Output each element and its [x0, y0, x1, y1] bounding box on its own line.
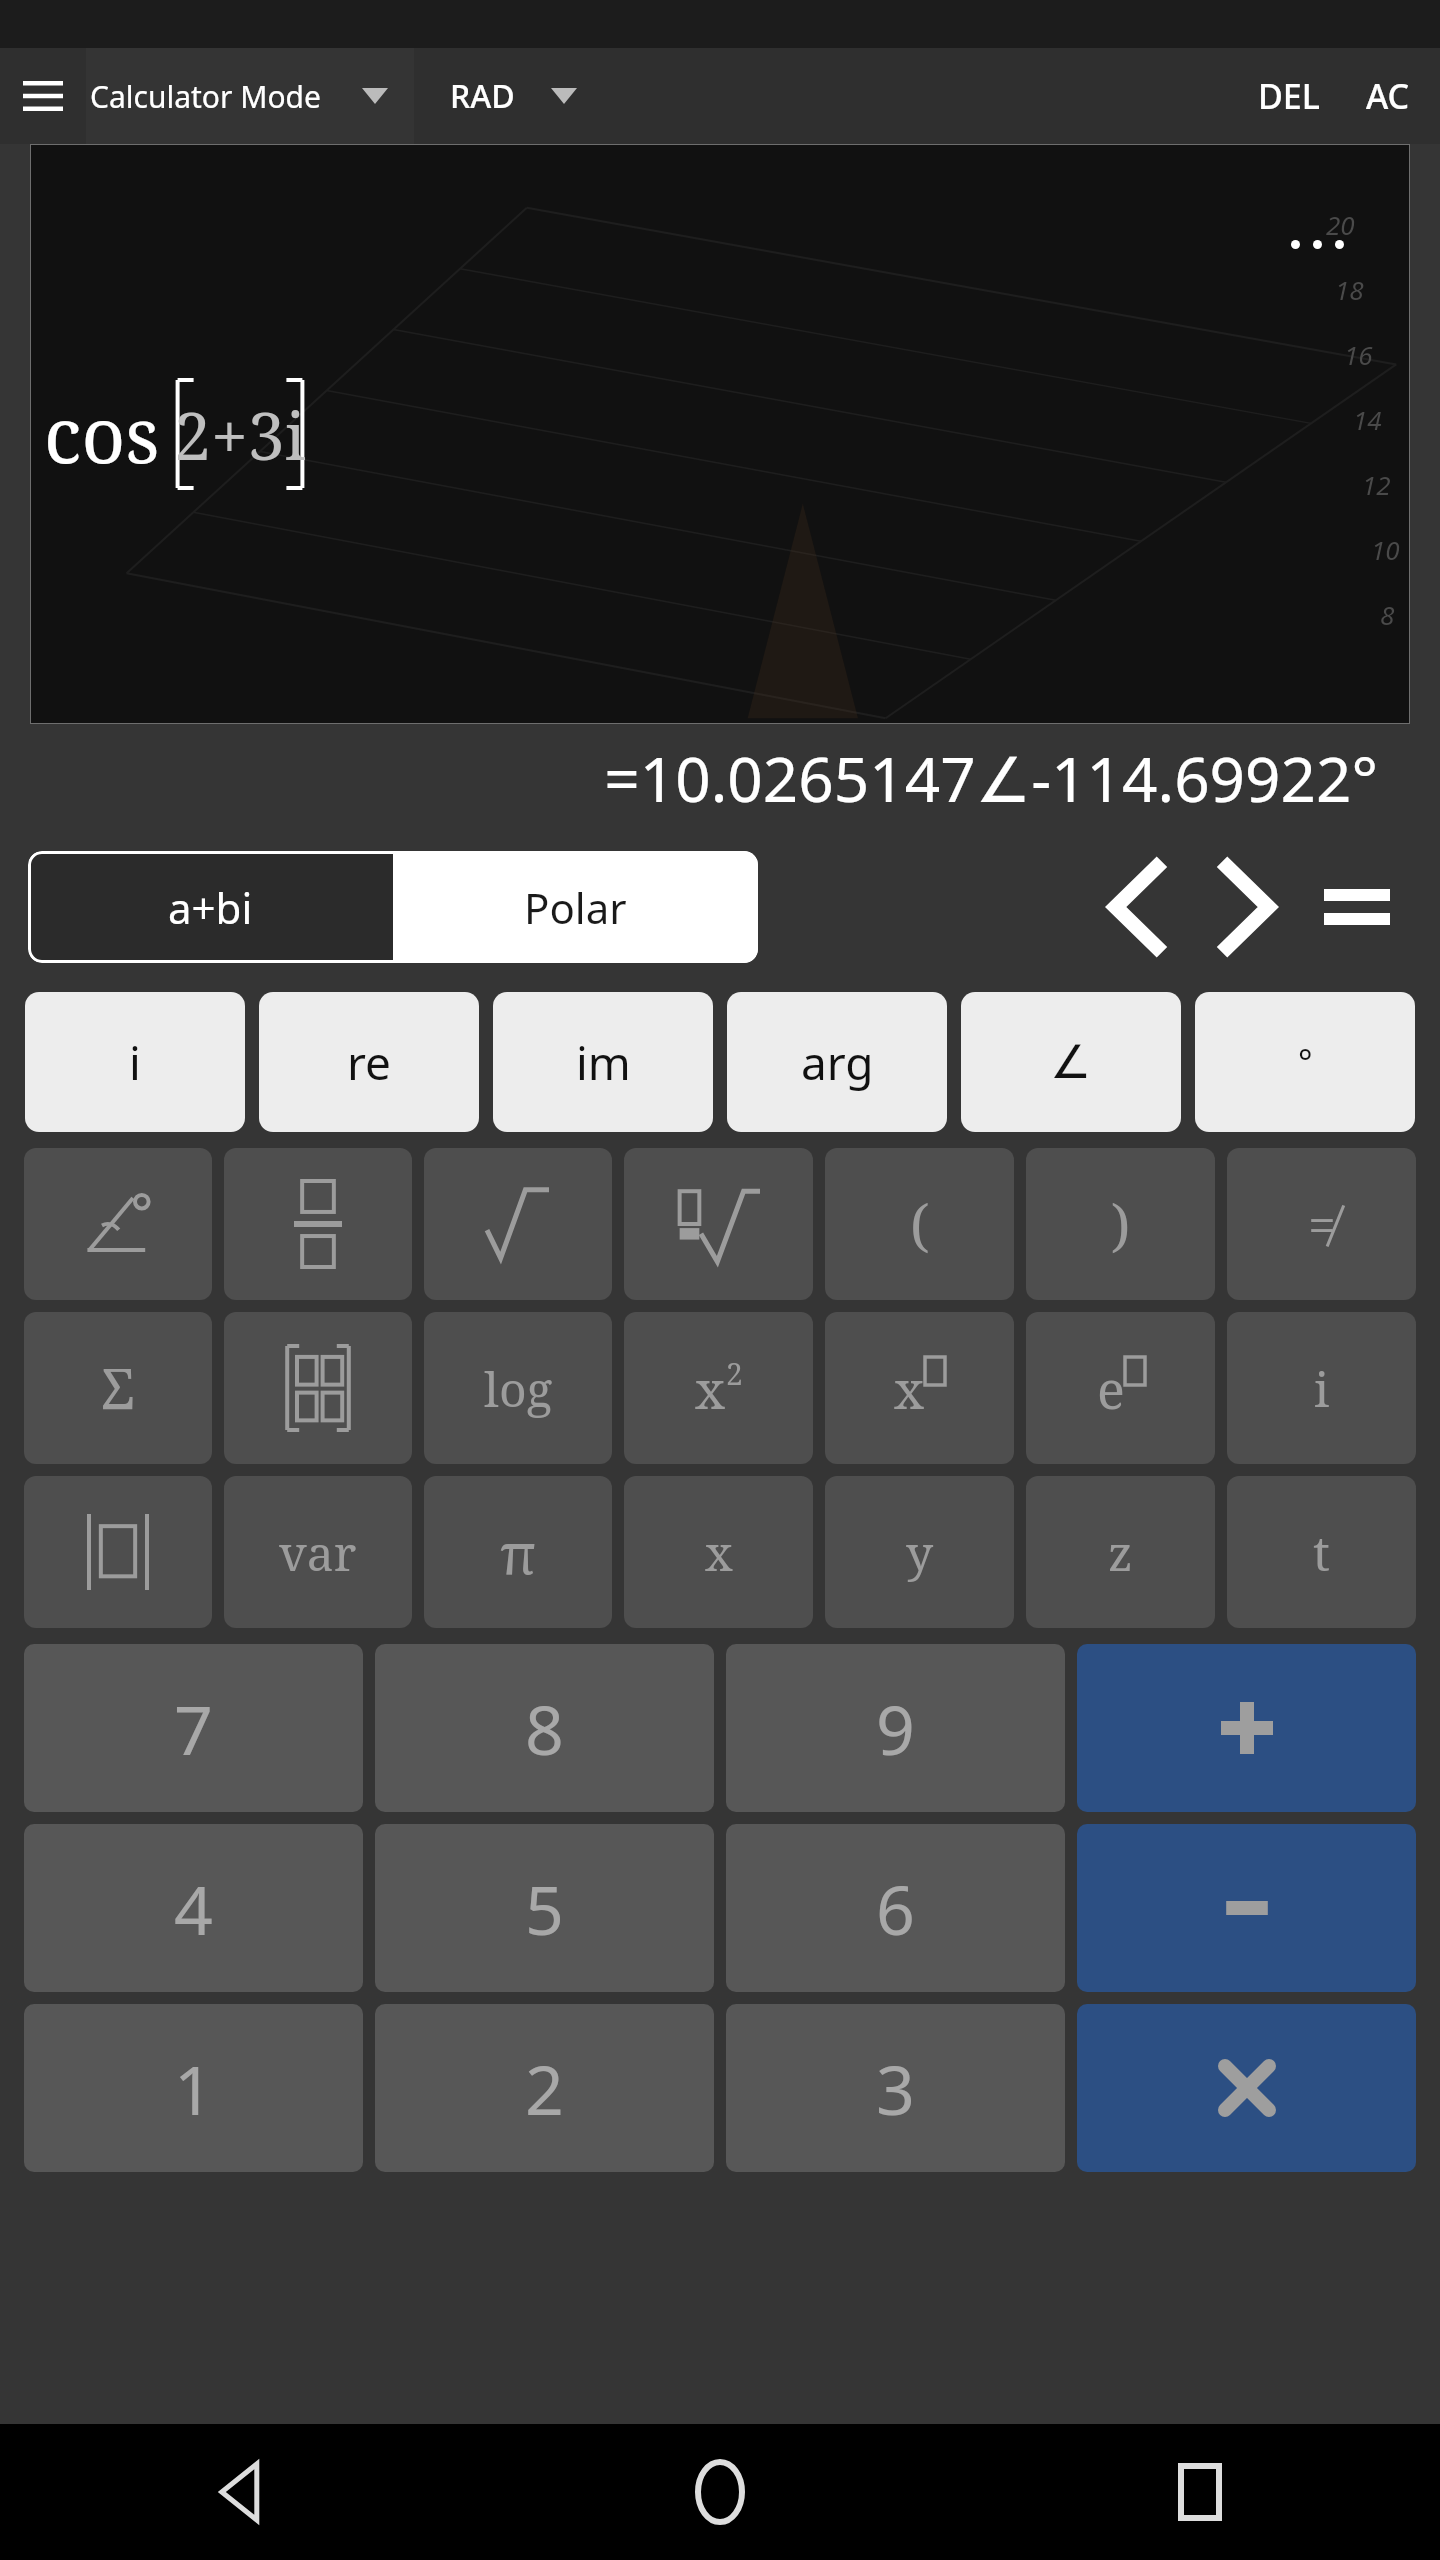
staticText: x: [894, 1353, 925, 1424]
button[interactable]: Σ: [24, 1312, 212, 1464]
staticText: re: [347, 1031, 392, 1094]
button[interactable]: Plus: [1077, 1644, 1416, 1812]
staticText: x: [705, 1520, 733, 1585]
staticText: π: [500, 1514, 537, 1590]
button[interactable]: More options: [1291, 240, 1344, 249]
staticText: 2+3i: [174, 389, 306, 479]
staticText: i: [129, 1031, 141, 1094]
button[interactable]: re: [259, 992, 479, 1132]
button[interactable]: 7: [24, 1644, 363, 1812]
button[interactable]: i: [25, 992, 245, 1132]
button[interactable]: XPOW: [825, 1312, 1014, 1464]
button[interactable]: °: [1195, 992, 1415, 1132]
staticText: 2: [726, 1353, 743, 1394]
staticText: 3: [876, 2042, 915, 2135]
staticText: y: [906, 1520, 934, 1585]
button[interactable]: FRAC: [224, 1148, 412, 1300]
button[interactable]: EPOW: [1026, 1312, 1215, 1464]
button[interactable]: NROOT: [624, 1148, 813, 1300]
staticText: 7: [174, 1682, 213, 1775]
button[interactable]: 8: [375, 1644, 714, 1812]
button[interactable]: var: [224, 1476, 412, 1628]
staticText: cos: [44, 382, 160, 486]
button[interactable]: log: [424, 1312, 612, 1464]
button[interactable]: Recents: [960, 2424, 1440, 2560]
staticText: 9: [876, 1682, 915, 1775]
staticText: z: [1108, 1520, 1133, 1585]
staticText: e: [1097, 1353, 1125, 1424]
staticText: 8: [1380, 597, 1395, 632]
button[interactable]: ANGDEG: [24, 1148, 212, 1300]
staticText: x: [695, 1353, 726, 1424]
staticText: 20: [1326, 207, 1355, 242]
button[interactable]: z: [1026, 1476, 1215, 1628]
button[interactable]: ABS: [24, 1476, 212, 1628]
button[interactable]: SQRT: [424, 1148, 612, 1300]
button[interactable]: im: [493, 992, 713, 1132]
button[interactable]: Menu: [0, 48, 86, 144]
staticText: Polar: [524, 879, 627, 936]
staticText: var: [279, 1520, 357, 1585]
staticText: a+bi: [168, 879, 253, 936]
staticText: 1: [174, 2042, 213, 2135]
staticText: 16: [1344, 337, 1373, 372]
button[interactable]: y: [825, 1476, 1014, 1628]
button[interactable]: Next: [1192, 852, 1302, 962]
button[interactable]: Polar: [393, 851, 758, 963]
staticText: 8: [525, 1682, 564, 1775]
staticText: 4: [174, 1862, 213, 1955]
button[interactable]: Home: [480, 2424, 960, 2560]
button[interactable]: π: [424, 1476, 612, 1628]
button[interactable]: i: [1227, 1312, 1416, 1464]
button[interactable]: Equals: [1302, 852, 1412, 962]
button[interactable]: 6: [726, 1824, 1065, 1992]
staticText: (: [910, 1186, 930, 1262]
button[interactable]: a+bi: [28, 851, 393, 963]
button[interactable]: (: [825, 1148, 1014, 1300]
button[interactable]: XSQ: [624, 1312, 813, 1464]
staticText: 5: [525, 1862, 564, 1955]
staticText: 10: [1371, 532, 1400, 567]
button[interactable]: 5: [375, 1824, 714, 1992]
button[interactable]: More options: [30, 144, 1410, 724]
staticText: 14: [1353, 402, 1382, 437]
staticText: 12: [1362, 467, 1391, 502]
staticText: ≠: [1308, 1190, 1336, 1258]
button[interactable]: 2: [375, 2004, 714, 2172]
button[interactable]: ∠: [961, 992, 1181, 1132]
staticText: DEL: [1258, 73, 1320, 119]
button[interactable]: 9: [726, 1644, 1065, 1812]
staticText: i: [1314, 1356, 1330, 1421]
staticText: RAD: [450, 74, 515, 118]
button[interactable]: 3: [726, 2004, 1065, 2172]
staticText: ): [1111, 1186, 1131, 1262]
staticText: log: [484, 1356, 553, 1421]
staticText: =10.0265147∠-114.69922°: [0, 736, 1378, 820]
staticText: im: [576, 1031, 631, 1094]
button[interactable]: Minus: [1077, 1824, 1416, 1992]
button[interactable]: ): [1026, 1148, 1215, 1300]
staticText: 6: [876, 1862, 915, 1955]
button[interactable]: Multiply: [1077, 2004, 1416, 2172]
button[interactable]: x: [624, 1476, 813, 1628]
button[interactable]: AC: [1358, 48, 1418, 144]
button[interactable]: DEL: [1250, 48, 1328, 144]
staticText: 2: [525, 2042, 564, 2135]
button[interactable]: MATRIX: [224, 1312, 412, 1464]
staticText: 18: [1335, 272, 1364, 307]
staticText: Σ: [101, 1350, 135, 1426]
staticText: ∠: [1050, 1035, 1092, 1089]
button[interactable]: ≠: [1227, 1148, 1416, 1300]
staticText: t: [1313, 1520, 1330, 1585]
button[interactable]: Calculator Mode: [86, 48, 414, 144]
button[interactable]: Previous: [1082, 852, 1192, 962]
button[interactable]: arg: [727, 992, 947, 1132]
button[interactable]: 1: [24, 2004, 363, 2172]
staticText: Calculator Mode: [90, 76, 321, 117]
button[interactable]: 4: [24, 1824, 363, 1992]
staticText: °: [1298, 1039, 1313, 1085]
button[interactable]: Back: [0, 2424, 480, 2560]
button[interactable]: t: [1227, 1476, 1416, 1628]
staticText: AC: [1366, 73, 1410, 119]
button[interactable]: RAD: [450, 48, 577, 144]
